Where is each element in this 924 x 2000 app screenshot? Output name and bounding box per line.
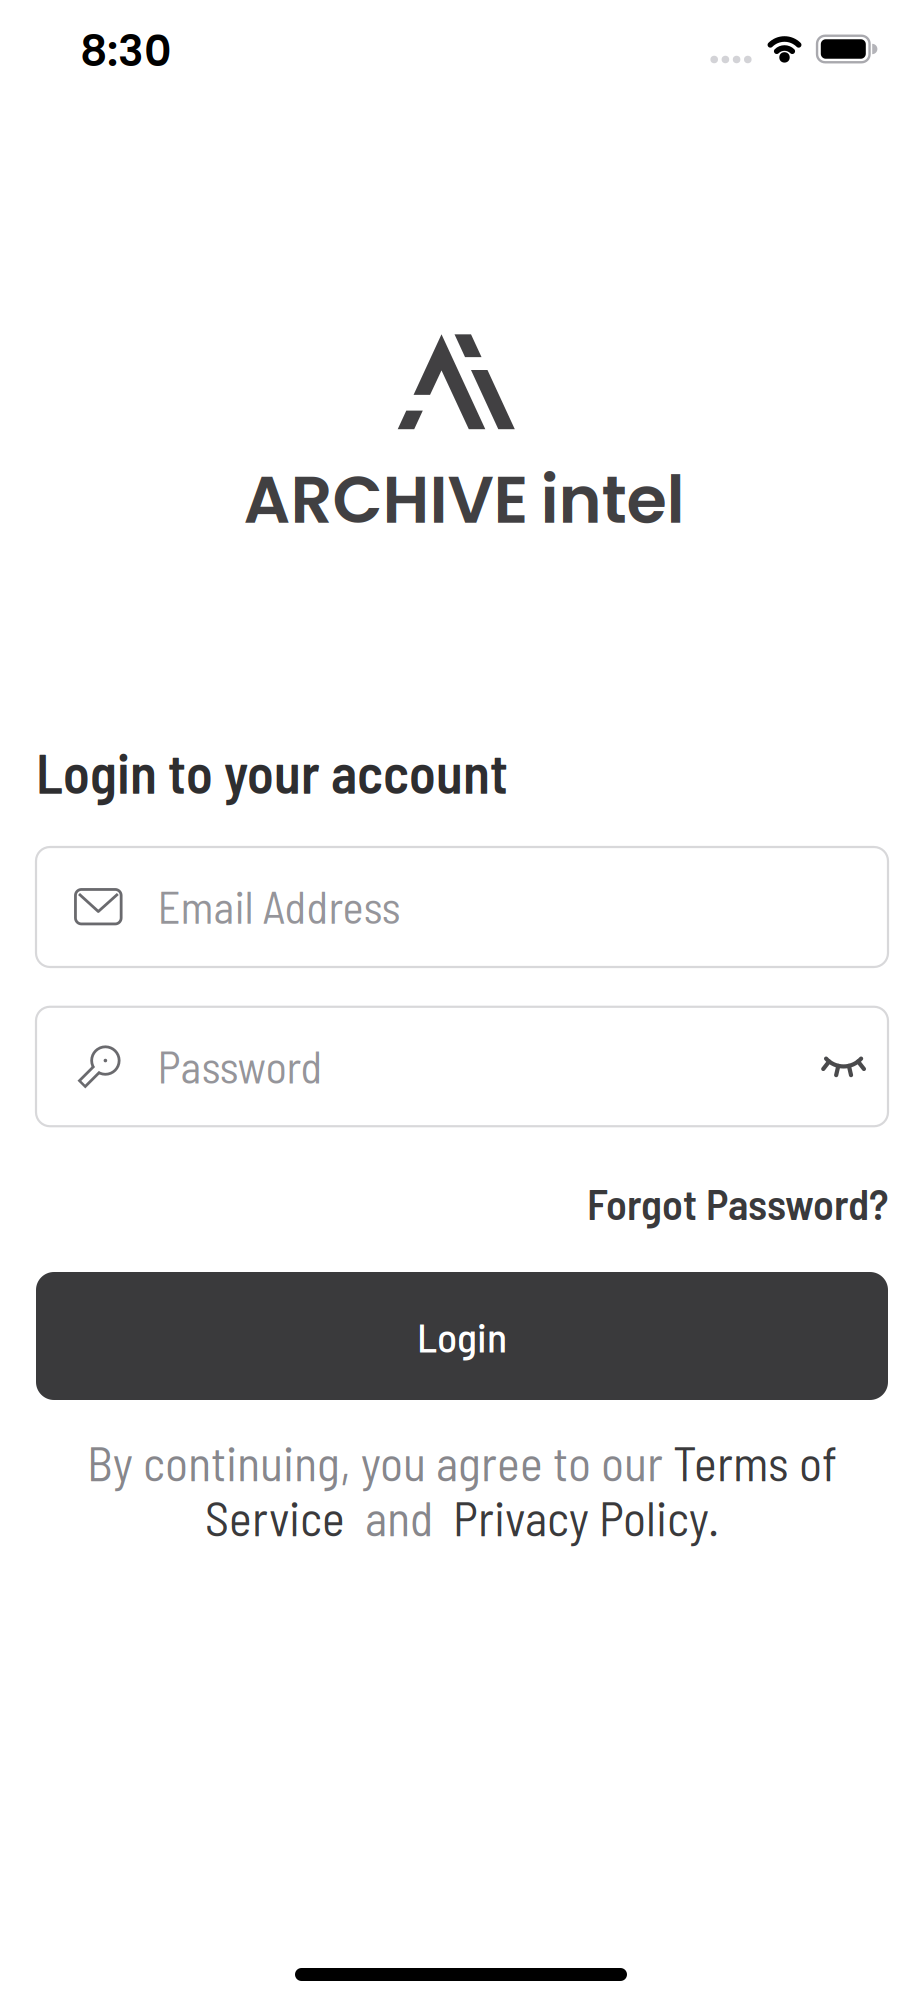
button[interactable]: Service — [205, 1488, 345, 1546]
staticText: Login — [417, 1311, 507, 1361]
button[interactable]: Forgot Password? — [587, 1177, 888, 1229]
staticText: 8:30 — [80, 21, 172, 81]
button[interactable]: Privacy Policy. — [453, 1488, 719, 1546]
button[interactable]: Login — [36, 1272, 888, 1400]
staticText: Login to your account — [36, 739, 508, 805]
staticText: Email Address — [157, 879, 400, 933]
staticText: intel — [540, 454, 684, 546]
staticText: Terms of — [673, 1433, 837, 1491]
staticText: Privacy Policy. — [453, 1488, 719, 1546]
staticText: Service — [205, 1488, 345, 1546]
button[interactable]: Terms of — [673, 1433, 837, 1491]
staticText: By continuing, you agree to our — [87, 1433, 673, 1491]
staticText: Password — [157, 1039, 322, 1092]
button[interactable]: Password — [36, 1007, 888, 1126]
staticText: Forgot Password? — [587, 1177, 888, 1229]
button[interactable]: Email Address — [36, 847, 888, 967]
staticText: ARCHIVE — [243, 454, 528, 546]
staticText: and — [345, 1488, 453, 1546]
